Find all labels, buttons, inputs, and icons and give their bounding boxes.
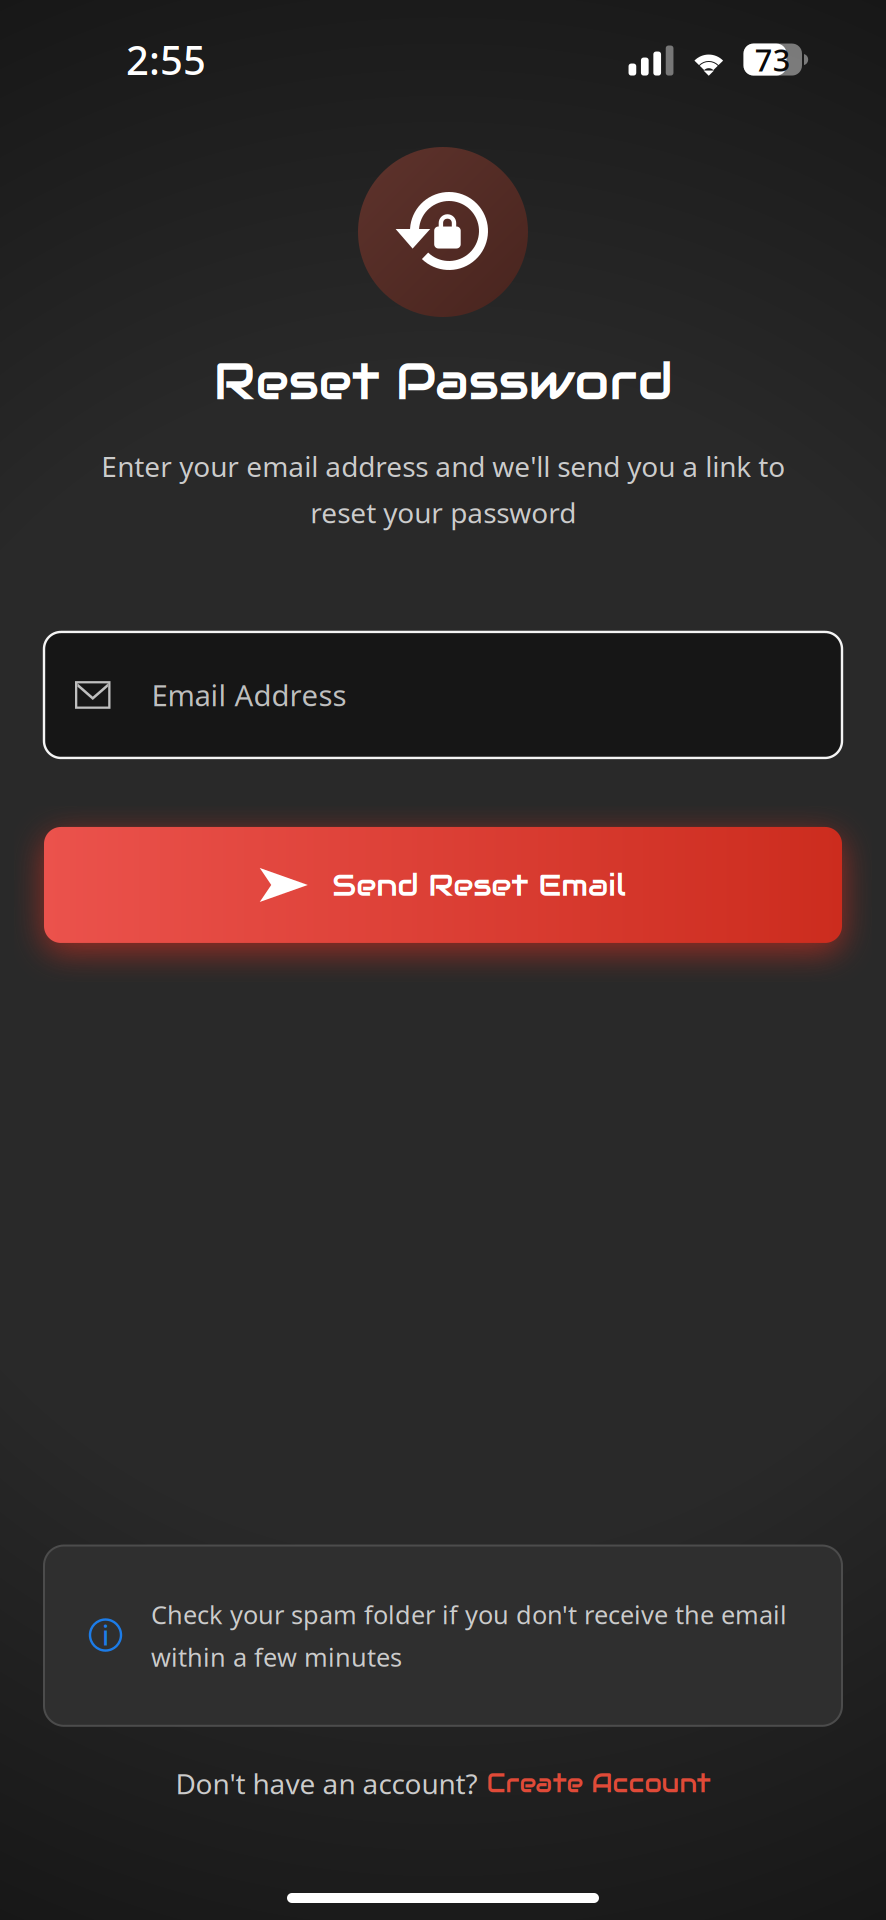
staticText: Reset Password (213, 349, 672, 414)
staticText: i (102, 1617, 109, 1653)
staticText: Send Reset Email (332, 865, 626, 904)
staticText: Create Account (486, 1767, 710, 1800)
staticText: Email Address (151, 675, 346, 714)
staticText: Check your spam folder if you don't rece… (151, 1597, 787, 1674)
staticText: Don't have an account? (175, 1765, 477, 1802)
staticText: 73 (755, 39, 791, 80)
staticText: 2:55 (126, 33, 206, 86)
button[interactable]: Create Account (486, 1767, 710, 1800)
button[interactable]: Send Reset Email (44, 827, 842, 943)
staticText: Enter your email address and we'll send … (101, 448, 785, 531)
